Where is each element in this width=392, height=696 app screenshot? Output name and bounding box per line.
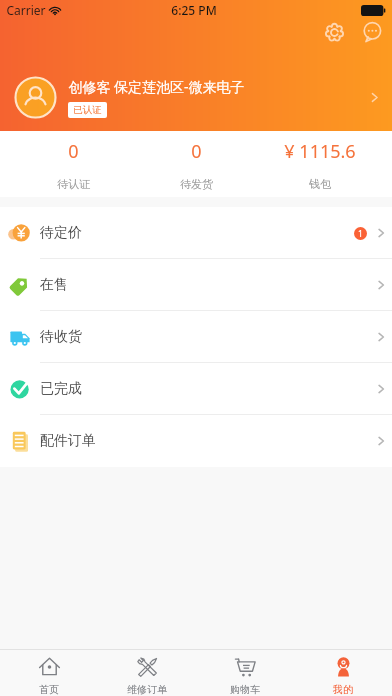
staticText: 配件订单 (40, 432, 96, 450)
staticText: 创修客 保定莲池区-微来电子 (68, 77, 245, 96)
button[interactable]: 我的 (294, 650, 392, 696)
button[interactable]: Messages (356, 16, 388, 48)
button[interactable]: 0 (11, 131, 135, 197)
staticText: 已认证 (73, 104, 102, 116)
staticText: 待认证 (57, 177, 90, 191)
button[interactable]: 待收货 (0, 311, 392, 363)
button[interactable]: ¥ 1115.6 (258, 131, 381, 197)
staticText: 0 (191, 139, 202, 164)
staticText: 待发货 (180, 177, 213, 191)
staticText: 在售 (40, 276, 68, 294)
staticText: 购物车 (230, 683, 260, 696)
button[interactable]: 维修订单 (98, 650, 196, 696)
staticText: 6:25 PM (171, 2, 217, 18)
button[interactable]: 待定价 (0, 207, 392, 259)
button[interactable]: 创修客 保定莲池区-微来电子 (0, 70, 392, 124)
staticText: 待收货 (40, 328, 82, 346)
staticText: 已完成 (40, 380, 82, 398)
button[interactable]: 已完成 (0, 363, 392, 415)
button[interactable]: 配件订单 (0, 415, 392, 467)
button[interactable]: 在售 (0, 259, 392, 311)
staticText: 待定价 (40, 224, 82, 242)
staticText: ¥ 1115.6 (284, 139, 356, 164)
staticText: 1 (358, 228, 363, 240)
button[interactable]: 0 (135, 131, 258, 197)
staticText: 首页 (39, 683, 59, 696)
button[interactable]: Settings (318, 16, 350, 48)
staticText: 维修订单 (127, 683, 167, 696)
staticText: Carrier (6, 2, 46, 18)
button[interactable]: 购物车 (196, 650, 294, 696)
staticText: 钱包 (309, 177, 331, 191)
button[interactable]: 首页 (0, 650, 98, 696)
staticText: 0 (68, 139, 79, 164)
staticText: 我的 (333, 683, 353, 696)
